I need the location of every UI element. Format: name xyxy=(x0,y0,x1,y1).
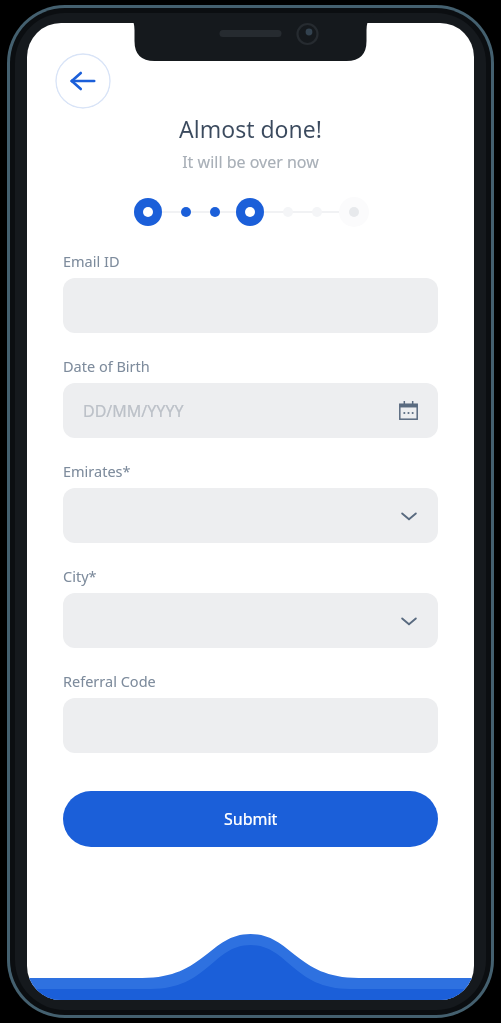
button[interactable]: Submit xyxy=(63,791,438,847)
button[interactable]: DD/MM/YYYY xyxy=(63,383,438,438)
button[interactable]: Back xyxy=(55,53,111,109)
staticText: Email ID xyxy=(63,251,120,271)
staticText: Emirates* xyxy=(63,461,131,481)
staticText: It will be over now xyxy=(27,151,474,173)
staticText: Date of Birth xyxy=(63,356,150,376)
staticText: Submit xyxy=(224,808,278,830)
button[interactable] xyxy=(63,488,438,543)
staticText: City* xyxy=(63,566,97,586)
staticText: DD/MM/YYYY xyxy=(83,400,184,422)
staticText: Referral Code xyxy=(63,671,156,691)
button[interactable] xyxy=(63,593,438,648)
staticText: Almost done! xyxy=(27,113,474,144)
